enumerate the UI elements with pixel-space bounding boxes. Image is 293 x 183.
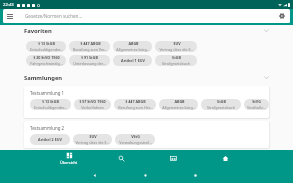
- staticText: Allgemeines bürg...: [162, 105, 196, 110]
- button[interactable]: StVG: [244, 99, 269, 110]
- button[interactable]: Home: [199, 150, 251, 167]
- staticText: Artikel 1 EUV: [121, 58, 145, 63]
- staticText: StVG: [252, 99, 261, 104]
- staticText: Fahrgeschwindig...: [30, 61, 63, 66]
- staticText: Strafgesetzbuch: [162, 61, 190, 66]
- staticText: Testsammlung 2: [30, 125, 64, 131]
- button[interactable]: § 447 ABGB: [114, 99, 156, 110]
- button[interactable]: EUV: [155, 41, 197, 52]
- staticText: VStG: [131, 134, 140, 139]
- button[interactable]: Favoriten: [0, 25, 293, 36]
- staticText: § 447 ABGB: [125, 99, 146, 104]
- staticText: § 13 StGB: [38, 41, 55, 46]
- staticText: Allgemeines bürg...: [116, 47, 150, 52]
- button[interactable]: Artikel 2 EUV: [30, 134, 70, 145]
- staticText: Vertrag über die E...: [75, 140, 110, 145]
- other: Home: [143, 173, 148, 178]
- button[interactable]: Menu: [3, 9, 290, 23]
- staticText: Berufung zum Her...: [118, 105, 153, 110]
- button[interactable]: StGB: [155, 55, 197, 66]
- other: Recents: [193, 173, 198, 178]
- staticText: 22:43: [3, 2, 14, 8]
- staticText: § 447 ABGB: [80, 41, 101, 46]
- button[interactable]: Artikel 1 EUV: [113, 55, 152, 66]
- other: Settings: [279, 13, 285, 19]
- button[interactable]: Testsammlung 2: [24, 121, 269, 148]
- staticText: Sammlungen: [24, 74, 63, 82]
- staticText: Verwaltungsstraf...: [119, 140, 152, 145]
- staticText: StGB: [217, 99, 226, 104]
- staticText: Vertrag über die E...: [159, 47, 194, 52]
- other: Menu: [7, 14, 13, 19]
- button[interactable]: § 91 StGB: [69, 55, 110, 66]
- button[interactable]: Übersicht: [43, 150, 95, 167]
- staticText: Testsammlung 1: [30, 90, 64, 96]
- other: Back: [92, 173, 97, 178]
- button[interactable]: ABGB: [113, 41, 152, 52]
- staticText: Berufung zum Ver...: [73, 47, 107, 52]
- button[interactable]: Sammlungen: [0, 72, 293, 83]
- staticText: Entschuldigender...: [34, 105, 67, 110]
- staticText: § 13 StGB: [42, 99, 59, 104]
- staticText: Vorbeifahren: [81, 105, 104, 110]
- staticText: ABGB: [128, 41, 139, 46]
- button[interactable]: § 13 StGB: [30, 99, 71, 110]
- staticText: ABGB: [174, 99, 185, 104]
- staticText: Übersicht: [60, 160, 78, 165]
- button[interactable]: ABGB: [159, 99, 198, 110]
- button[interactable]: Testsammlung 1: [24, 86, 269, 118]
- staticText: Strafgesetzbuch: [207, 105, 235, 110]
- button[interactable]: § 13 StGB: [26, 41, 66, 52]
- staticText: § 20 StVO 1960: [33, 55, 60, 60]
- staticText: Unterlassung der...: [73, 61, 106, 66]
- staticText: Gesetze/Normen suchen...: [25, 13, 83, 19]
- staticText: EUV: [173, 41, 181, 46]
- staticText: Artikel 2 EUV: [38, 137, 62, 142]
- staticText: § 91 StGB: [81, 55, 98, 60]
- staticText: Entschuldigender...: [30, 47, 63, 52]
- button[interactable]: StGB: [201, 99, 241, 110]
- staticText: Strafvollzugsg...: [246, 105, 267, 110]
- button[interactable]: VStG: [115, 134, 155, 145]
- button[interactable]: News: [147, 150, 199, 167]
- button[interactable]: § 57 StVO 1960: [74, 99, 111, 110]
- staticText: EUV: [89, 134, 97, 139]
- staticText: StGB: [172, 55, 181, 60]
- button[interactable]: § 447 ABGB: [69, 41, 110, 52]
- button[interactable]: § 20 StVO 1960: [26, 55, 66, 66]
- button[interactable]: EUV: [73, 134, 112, 145]
- button[interactable]: Suche: [95, 150, 147, 167]
- staticText: § 57 StVO 1960: [79, 99, 106, 104]
- staticText: Favoriten: [24, 27, 52, 35]
